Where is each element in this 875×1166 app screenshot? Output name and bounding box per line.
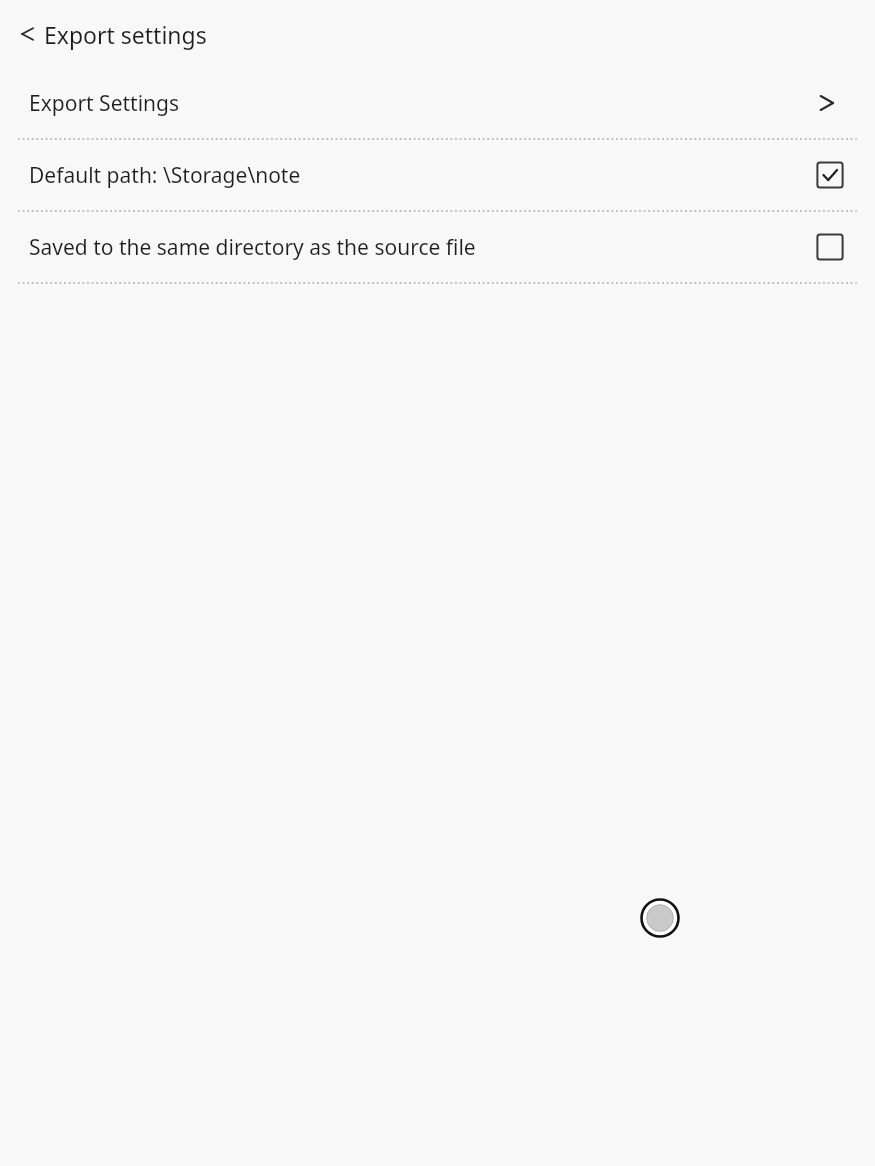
staticText: Export Settings <box>29 89 803 118</box>
button[interactable]: Open export settings <box>811 86 845 120</box>
staticText: Default path: \Storage\note <box>29 161 807 190</box>
button[interactable]: Export Settings <box>0 68 875 138</box>
button[interactable]: Save to source directory checkbox, unche… <box>815 232 845 262</box>
button[interactable]: Saved to the same directory as the sourc… <box>0 212 875 282</box>
staticText: Export settings <box>44 19 207 50</box>
button[interactable]: Default path checkbox, checked <box>815 160 845 190</box>
button[interactable]: Back <box>9 17 43 51</box>
staticText: Saved to the same directory as the sourc… <box>29 233 807 262</box>
button[interactable]: Default path: \Storage\note <box>0 140 875 210</box>
